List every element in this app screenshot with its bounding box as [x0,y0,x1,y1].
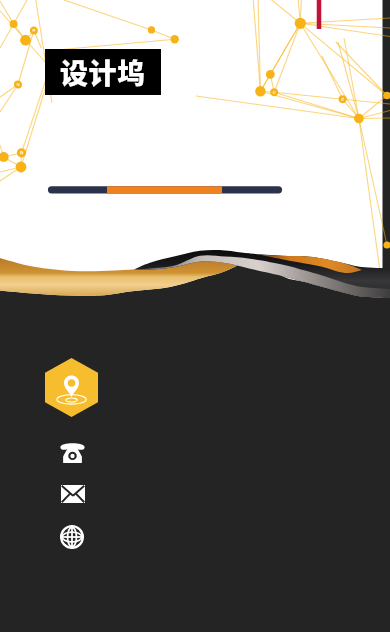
staticText: 设计坞 [60,52,146,93]
button[interactable]: Website [60,525,84,549]
button[interactable]: Location [45,358,98,417]
button[interactable]: Call [60,442,85,463]
button[interactable]: 设计坞 [45,49,161,95]
button[interactable]: Email [61,485,85,503]
